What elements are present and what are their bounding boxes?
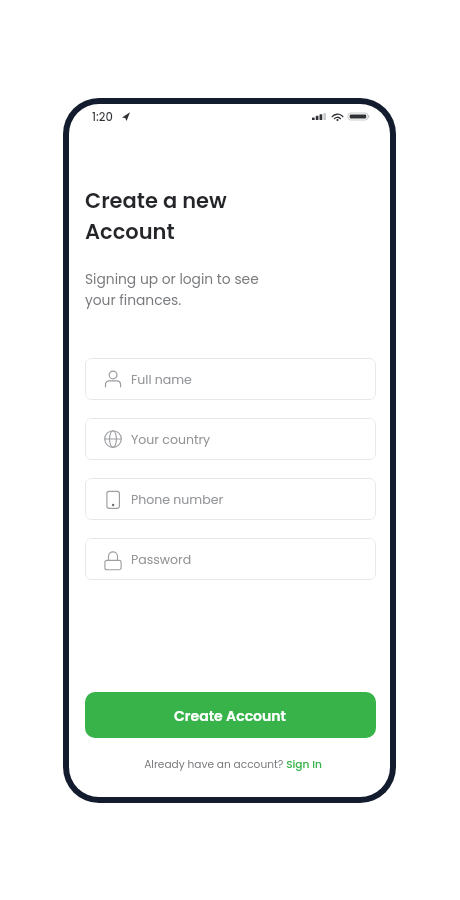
button[interactable]: Create Account <box>85 692 376 738</box>
staticText: Signing up or login to see your finances… <box>85 270 259 310</box>
staticText: Your country <box>131 431 211 448</box>
staticText: Password <box>131 551 192 568</box>
staticText: Create Account <box>174 706 287 726</box>
staticText: Full name <box>131 371 192 388</box>
staticText: Create a new Account <box>85 186 227 246</box>
button[interactable]: Full name <box>85 358 376 400</box>
staticText: Phone number <box>131 491 224 508</box>
staticText: 1:20 <box>92 109 113 125</box>
button[interactable]: Password <box>85 538 376 580</box>
button[interactable]: Your country <box>85 418 376 460</box>
staticText: Already have an account? Sign In <box>144 757 322 772</box>
button[interactable]: Phone number <box>85 478 376 520</box>
button[interactable]: Already have an account? Sign In <box>87 757 378 772</box>
